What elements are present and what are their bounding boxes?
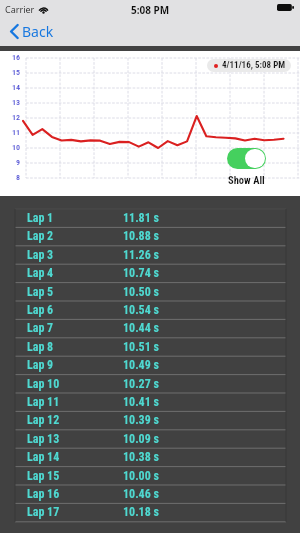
staticText: 10.09 s: [123, 432, 159, 446]
staticText: 5:08 PM: [131, 3, 170, 17]
button[interactable]: Lap 17: [15, 503, 286, 521]
staticText: 8: [8, 173, 20, 182]
button[interactable]: Lap 1: [15, 209, 286, 227]
staticText: Lap 4: [27, 266, 54, 280]
staticText: Back: [22, 22, 54, 41]
staticText: 9: [8, 158, 20, 167]
button[interactable]: Lap 11: [15, 393, 286, 411]
staticText: Lap 3: [27, 248, 54, 262]
staticText: 10.38 s: [123, 450, 159, 464]
staticText: 11.26 s: [123, 248, 159, 262]
button[interactable]: Lap 2: [15, 227, 286, 245]
button[interactable]: 4/11/16, 5:08 PM: [207, 59, 291, 72]
staticText: Lap 6: [27, 303, 54, 317]
staticText: 10.51 s: [123, 340, 159, 354]
staticText: Lap 12: [27, 413, 60, 427]
button[interactable]: Lap 5: [15, 283, 286, 301]
staticText: 10.00 s: [123, 469, 159, 483]
staticText: 10.18 s: [123, 505, 159, 519]
staticText: 11: [8, 128, 20, 137]
staticText: 11.81 s: [123, 211, 159, 225]
button[interactable]: Lap 14: [15, 448, 286, 466]
staticText: 10.39 s: [123, 413, 159, 427]
staticText: Lap 16: [27, 487, 60, 501]
staticText: Carrier: [5, 3, 35, 15]
staticText: Show All: [228, 174, 265, 186]
staticText: 10.50 s: [123, 285, 159, 299]
staticText: Lap 11: [27, 395, 60, 409]
staticText: Lap 8: [27, 340, 54, 354]
staticText: Lap 14: [27, 450, 60, 464]
staticText: Lap 15: [27, 469, 60, 483]
staticText: 10.27 s: [123, 377, 159, 391]
staticText: 16: [8, 53, 20, 62]
staticText: Lap 2: [27, 229, 54, 243]
staticText: Lap 7: [27, 321, 54, 335]
button[interactable]: Lap 8: [15, 338, 286, 356]
button[interactable]: Lap 10: [15, 375, 286, 393]
staticText: Lap 9: [27, 358, 54, 372]
button[interactable]: Lap 3: [15, 246, 286, 264]
staticText: Lap 5: [27, 285, 54, 299]
button[interactable]: Lap 9: [15, 356, 286, 374]
staticText: 10.49 s: [123, 358, 159, 372]
button[interactable]: Lap 7: [15, 319, 286, 337]
staticText: 10.74 s: [123, 266, 159, 280]
button[interactable]: Lap 16: [15, 485, 286, 503]
staticText: Lap 10: [27, 377, 60, 391]
staticText: Lap 17: [27, 505, 60, 519]
staticText: Lap 13: [27, 432, 60, 446]
staticText: Lap 1: [27, 211, 54, 225]
staticText: 10.88 s: [123, 229, 159, 243]
button[interactable]: Lap 12: [15, 411, 286, 429]
staticText: 10: [8, 143, 20, 152]
button[interactable]: Back: [7, 18, 57, 44]
staticText: 12: [8, 113, 20, 122]
staticText: 10.54 s: [123, 303, 159, 317]
staticText: 15: [8, 68, 20, 77]
button[interactable]: Lap 13: [15, 430, 286, 448]
button[interactable]: Show All toggle: [227, 148, 266, 169]
staticText: 10.46 s: [123, 487, 159, 501]
button[interactable]: Lap 15: [15, 467, 286, 485]
staticText: 10.41 s: [123, 395, 159, 409]
button[interactable]: Lap 4: [15, 264, 286, 282]
staticText: 14: [8, 83, 20, 92]
staticText: 4/11/16, 5:08 PM: [222, 60, 286, 71]
button[interactable]: Lap 6: [15, 301, 286, 319]
staticText: 13: [8, 98, 20, 107]
staticText: 10.44 s: [123, 321, 159, 335]
